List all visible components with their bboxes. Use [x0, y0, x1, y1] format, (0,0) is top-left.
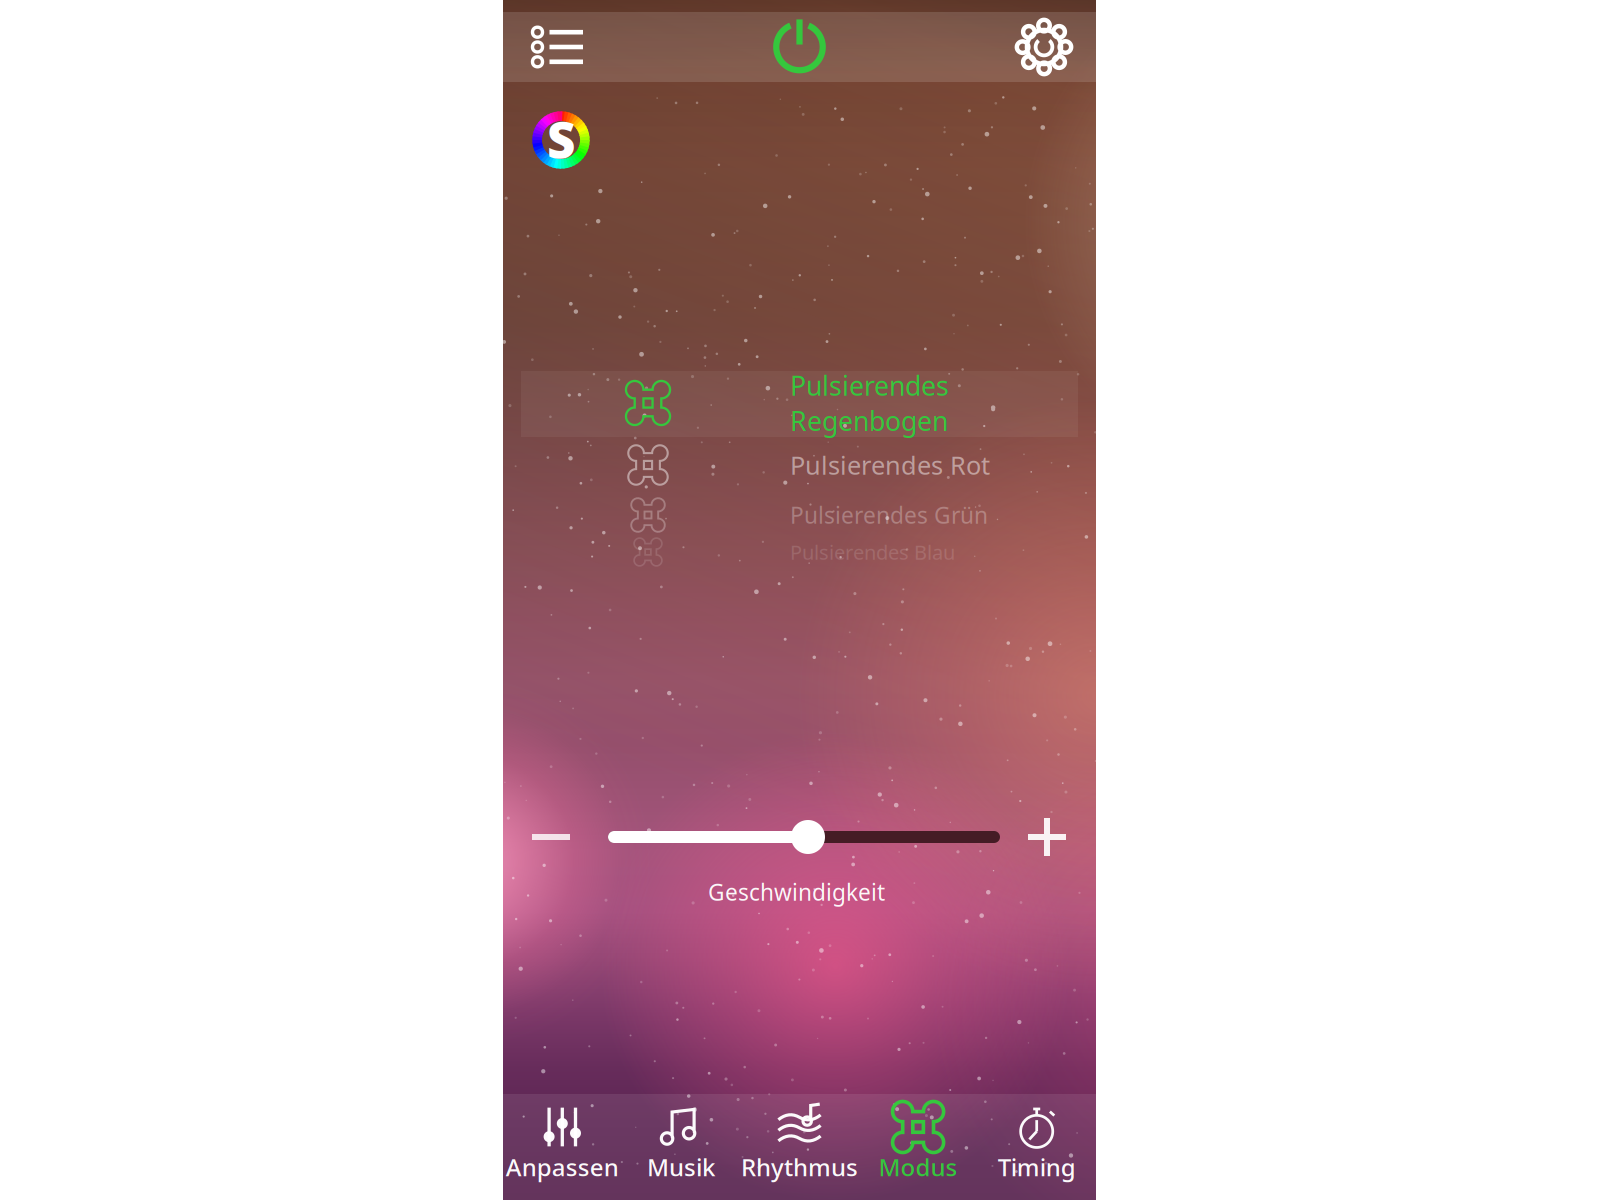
staticText: Pulsierendes Rot	[790, 448, 990, 482]
button[interactable]: Pulsierendes Blau	[503, 536, 1096, 568]
staticText: S	[547, 106, 575, 172]
staticText: Anpassen	[506, 1151, 619, 1183]
button[interactable]: Power	[756, 12, 842, 82]
button[interactable]: Timing	[977, 1094, 1096, 1200]
button[interactable]: Menu	[514, 12, 600, 82]
button[interactable]: Pulsierendes Grün	[503, 496, 1096, 534]
button[interactable]: Colour wheel	[522, 101, 600, 179]
button[interactable]: Rhythmus	[740, 1094, 859, 1200]
button[interactable]: Pulsierendes Regenbogen	[503, 369, 1096, 437]
button[interactable]: Decrease speed	[518, 808, 584, 866]
staticText: Pulsierendes Regenbogen	[790, 368, 949, 438]
staticText: Pulsierendes Blau	[790, 539, 955, 565]
button[interactable]: Modus	[859, 1094, 977, 1200]
button[interactable]: Settings	[1001, 12, 1087, 82]
button[interactable]: Anpassen	[503, 1094, 622, 1200]
button[interactable]: Pulsierendes Rot	[503, 442, 1096, 488]
button[interactable]: Musik	[622, 1094, 740, 1200]
staticText: Pulsierendes Grün	[790, 500, 988, 530]
button[interactable]: Increase speed	[1014, 808, 1080, 866]
staticText: Musik	[647, 1151, 715, 1183]
staticText: Rhythmus	[741, 1151, 858, 1183]
staticText: Geschwindigkeit	[708, 877, 885, 907]
staticText: Modus	[879, 1151, 958, 1183]
staticText: Timing	[998, 1151, 1076, 1183]
